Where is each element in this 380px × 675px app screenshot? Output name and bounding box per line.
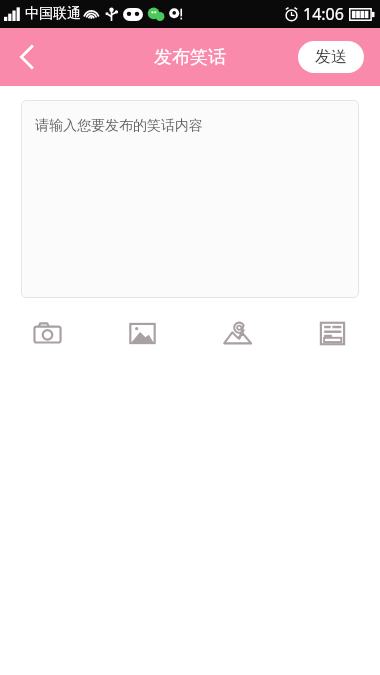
staticText: 请输入您要发布的笑话内容 — [35, 117, 203, 135]
button[interactable]: Location — [190, 311, 285, 355]
button[interactable]: 请输入您要发布的笑话内容 — [21, 100, 359, 298]
button[interactable]: Back — [0, 31, 52, 83]
button[interactable]: Camera — [0, 311, 95, 355]
staticText: 中国联通 — [25, 5, 81, 23]
staticText: 14:06 — [303, 3, 344, 25]
staticText: 发布笑话 — [154, 46, 226, 69]
button[interactable]: Text — [285, 311, 380, 355]
staticText: 发送 — [315, 47, 347, 67]
button[interactable]: 发送 — [298, 41, 364, 73]
button[interactable]: Photo — [95, 311, 190, 355]
